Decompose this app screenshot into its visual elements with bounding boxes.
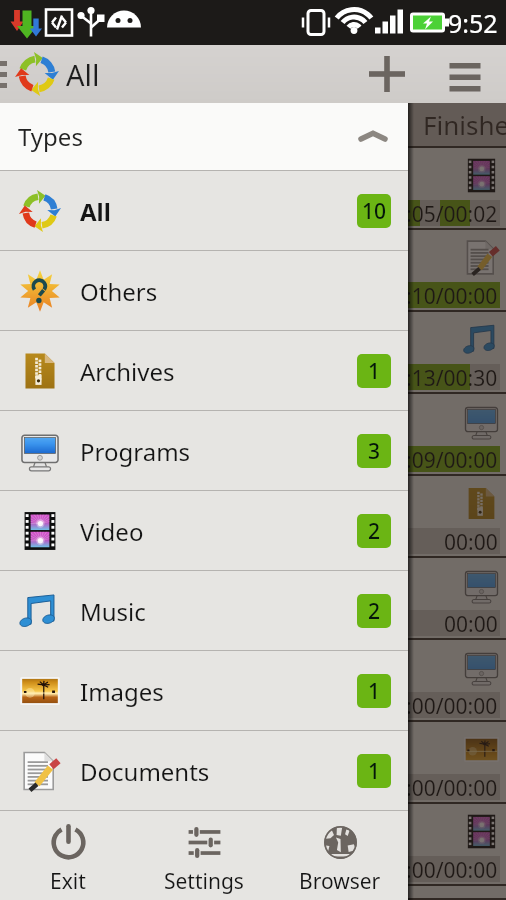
staticText: 1 [368,677,381,706]
staticText: 2 [368,597,381,626]
button[interactable]: Documents [0,731,408,811]
button[interactable]: Menu [436,45,494,103]
staticText: Exit [50,867,86,896]
staticText: 10 [362,197,387,226]
button[interactable]: Programs [0,411,408,491]
button[interactable]: Types [0,103,408,170]
staticText: 00:13/00:30 [382,364,498,390]
staticText: Types [18,120,83,153]
staticText: 00:00 [444,610,498,636]
staticText: Browser [299,867,381,896]
staticText: Others [80,275,158,308]
staticText: All [66,55,100,94]
staticText: 9:52 [448,6,498,40]
staticText: 00:00/00:00 [382,774,498,800]
staticText: Music [80,595,146,628]
staticText: Finished [423,107,506,142]
button[interactable]: Exit [0,811,136,896]
staticText: 00:00 [444,528,498,554]
button[interactable]: Browser [272,811,408,896]
staticText: Documents [80,755,210,788]
button[interactable]: All [0,171,408,251]
staticText: Programs [80,435,191,468]
staticText: 00:09/00:00 [382,446,498,472]
button[interactable]: Archives [0,331,408,411]
staticText: 00:00/00:00 [382,856,498,882]
staticText: Archives [80,355,175,388]
staticText: Settings [164,867,244,896]
staticText: 2 [368,517,381,546]
staticText: 00:10/00:00 [382,282,498,308]
button[interactable]: Images [0,651,408,731]
staticText: 00:05/00:02 [382,200,498,226]
staticText: 00:00/00:00 [382,692,498,718]
button[interactable]: Music [0,571,408,651]
button[interactable]: Others [0,251,408,331]
staticText: 3 [368,437,381,466]
button[interactable]: Settings [136,811,272,896]
staticText: 1 [368,357,381,386]
staticText: Images [80,675,164,708]
staticText: 1 [368,757,381,786]
staticText: All [80,195,111,228]
button[interactable]: Add download [358,45,416,103]
staticText: Video [80,515,144,548]
button[interactable]: Video [0,491,408,571]
